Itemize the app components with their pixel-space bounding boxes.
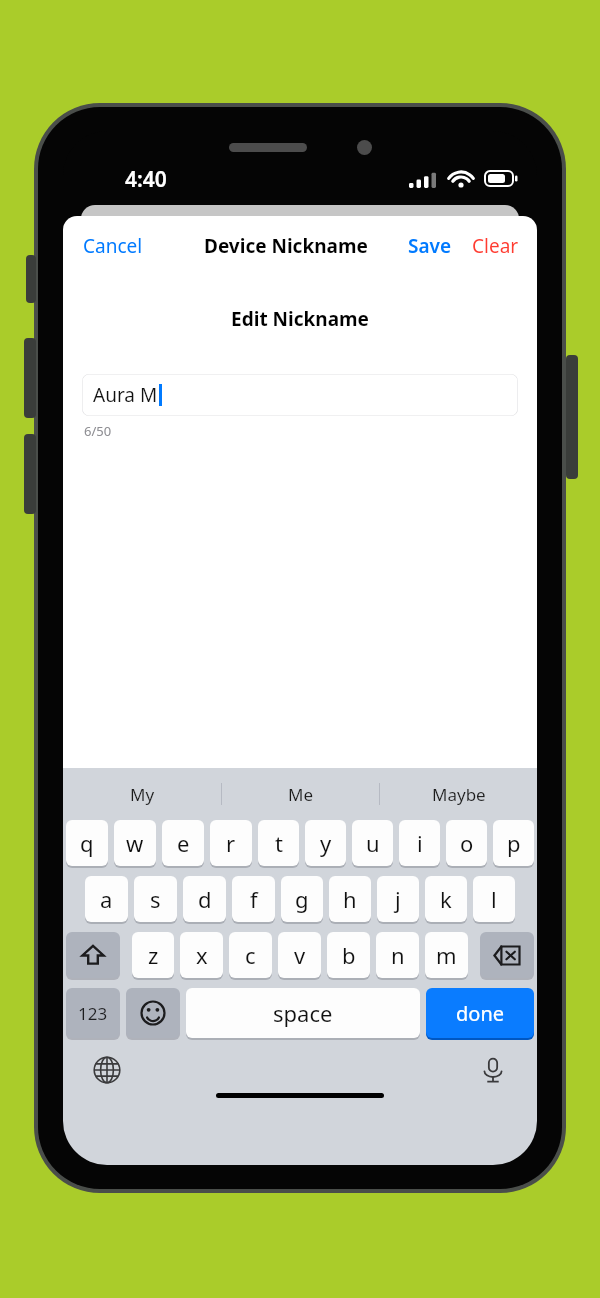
- staticText: Edit Nickname: [63, 306, 537, 332]
- staticText: 123: [78, 1002, 108, 1025]
- staticText: b: [342, 940, 356, 970]
- button[interactable]: p: [493, 820, 534, 866]
- button[interactable]: Clear: [460, 223, 537, 269]
- button[interactable]: Cancel: [63, 223, 163, 269]
- staticText: w: [126, 828, 144, 858]
- staticText: d: [198, 884, 212, 914]
- staticText: q: [80, 828, 94, 858]
- staticText: y: [320, 828, 332, 858]
- button[interactable]: m: [425, 932, 468, 978]
- button[interactable]: Me: [222, 768, 379, 820]
- button[interactable]: Save: [400, 223, 460, 269]
- staticText: x: [196, 940, 208, 970]
- button[interactable]: o: [446, 820, 487, 866]
- button[interactable]: Switch keyboard: [85, 1048, 129, 1092]
- staticText: e: [177, 828, 190, 858]
- button[interactable]: h: [329, 876, 371, 922]
- staticText: Aura M: [93, 382, 158, 408]
- button[interactable]: s: [134, 876, 177, 922]
- staticText: n: [391, 940, 405, 970]
- button[interactable]: Dictate: [471, 1048, 515, 1092]
- button[interactable]: z: [132, 932, 174, 978]
- button[interactable]: r: [210, 820, 252, 866]
- button[interactable]: Shift: [66, 932, 120, 978]
- staticText: a: [100, 884, 113, 914]
- button[interactable]: i: [399, 820, 440, 866]
- button[interactable]: t: [258, 820, 299, 866]
- staticText: Me: [288, 783, 314, 806]
- button[interactable]: space: [186, 988, 420, 1038]
- staticText: f: [250, 884, 258, 914]
- staticText: m: [436, 940, 457, 970]
- staticText: z: [148, 940, 159, 970]
- staticText: My: [130, 783, 155, 806]
- button[interactable]: done: [426, 988, 534, 1038]
- staticText: g: [295, 884, 309, 914]
- button[interactable]: l: [473, 876, 515, 922]
- button[interactable]: Numbers: [66, 988, 120, 1038]
- button[interactable]: e: [162, 820, 204, 866]
- button[interactable]: y: [305, 820, 346, 866]
- staticText: l: [491, 884, 497, 914]
- staticText: t: [275, 828, 283, 858]
- staticText: j: [395, 884, 401, 914]
- staticText: space: [273, 998, 333, 1028]
- staticText: Device Nickname: [204, 233, 368, 259]
- staticText: 4:40: [125, 165, 167, 194]
- staticText: v: [294, 940, 306, 970]
- button[interactable]: v: [278, 932, 321, 978]
- staticText: Cancel: [83, 233, 143, 259]
- button[interactable]: Emoji: [126, 988, 180, 1038]
- button[interactable]: k: [425, 876, 467, 922]
- staticText: i: [417, 828, 423, 858]
- staticText: o: [460, 828, 474, 858]
- staticText: h: [343, 884, 357, 914]
- staticText: r: [226, 828, 236, 858]
- staticText: Maybe: [432, 783, 486, 806]
- staticText: done: [456, 1000, 505, 1027]
- button[interactable]: a: [85, 876, 128, 922]
- staticText: Clear: [472, 233, 519, 259]
- button[interactable]: f: [232, 876, 275, 922]
- staticText: p: [507, 828, 521, 858]
- staticText: k: [440, 884, 452, 914]
- button[interactable]: Backspace: [480, 932, 534, 978]
- button[interactable]: u: [352, 820, 393, 866]
- staticText: 6/50: [84, 422, 112, 440]
- button[interactable]: My: [63, 768, 221, 820]
- button[interactable]: x: [180, 932, 223, 978]
- button[interactable]: n: [376, 932, 419, 978]
- button[interactable]: Aura M: [82, 374, 518, 416]
- staticText: c: [245, 940, 256, 970]
- staticText: s: [150, 884, 161, 914]
- button[interactable]: j: [377, 876, 419, 922]
- button[interactable]: q: [66, 820, 108, 866]
- button[interactable]: b: [327, 932, 370, 978]
- staticText: Save: [408, 233, 452, 259]
- staticText: u: [366, 828, 380, 858]
- button[interactable]: Maybe: [380, 768, 537, 820]
- button[interactable]: d: [183, 876, 226, 922]
- button[interactable]: c: [229, 932, 272, 978]
- button[interactable]: g: [281, 876, 323, 922]
- button[interactable]: w: [114, 820, 156, 866]
